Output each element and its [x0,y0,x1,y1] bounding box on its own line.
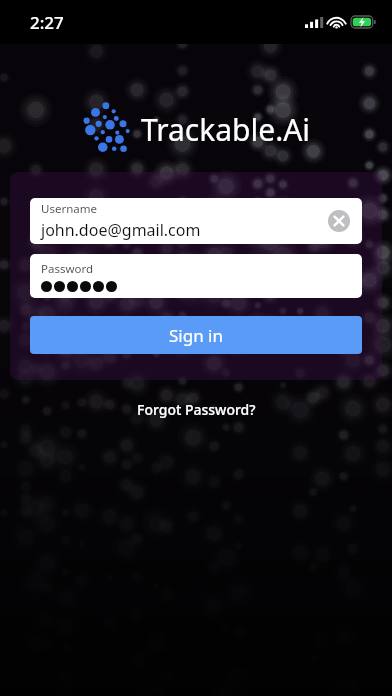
staticText: 2:27 [30,11,64,34]
button[interactable]: Password [30,254,362,298]
staticText: Password [41,261,94,277]
staticText: Trackable.Ai [141,109,311,150]
button[interactable]: Clear username [328,210,350,232]
staticText: john.doe@gmail.com [41,219,201,241]
button[interactable]: Username [30,198,362,244]
staticText: Forgot Password? [137,400,256,419]
staticText: Sign in [169,324,223,347]
staticText: Username [41,201,97,217]
button[interactable]: Sign in [30,316,362,354]
button[interactable]: Forgot Password? [127,396,266,423]
